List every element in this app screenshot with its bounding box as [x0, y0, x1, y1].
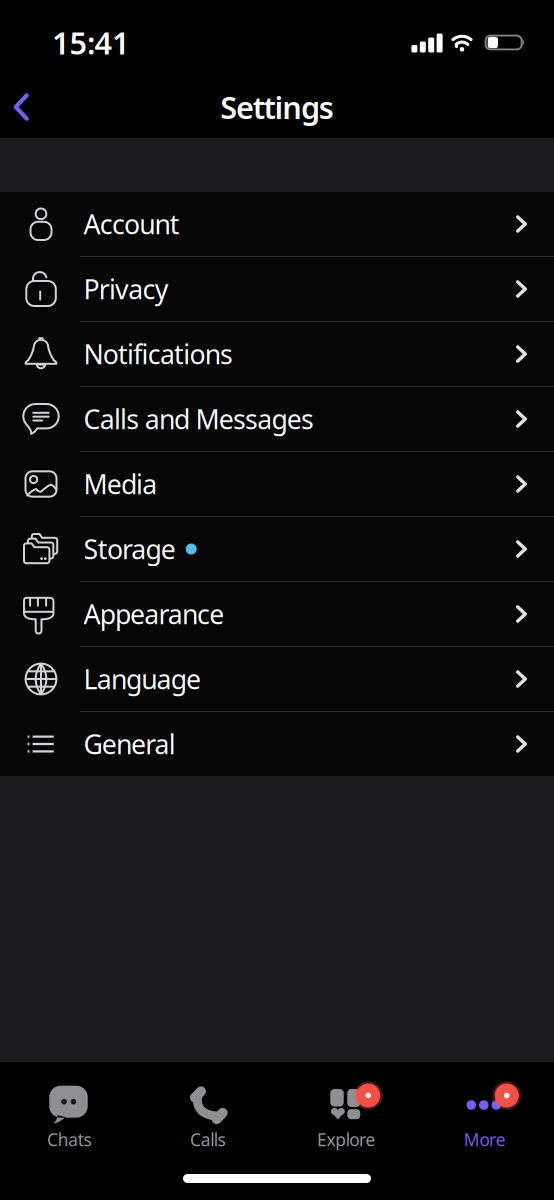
button[interactable]: Calls: [138, 1078, 277, 1151]
button[interactable]: Language: [0, 647, 554, 711]
staticText: Settings: [220, 87, 334, 127]
staticText: Appearance: [83, 596, 224, 632]
staticText: Privacy: [83, 271, 169, 307]
staticText: Calls: [190, 1128, 225, 1151]
staticText: Chats: [47, 1128, 91, 1151]
staticText: Storage: [83, 531, 176, 567]
staticText: 15:41: [52, 22, 130, 63]
button[interactable]: Back: [0, 89, 44, 133]
staticText: Calls and Messages: [83, 401, 314, 437]
staticText: Explore: [317, 1128, 376, 1151]
button[interactable]: Notifications: [0, 322, 554, 386]
button[interactable]: Account: [0, 192, 554, 256]
button[interactable]: Chats: [0, 1078, 138, 1151]
button[interactable]: Media: [0, 452, 554, 516]
button[interactable]: Appearance: [0, 582, 554, 646]
staticText: Notifications: [83, 336, 233, 372]
staticText: Language: [83, 661, 201, 697]
button[interactable]: More: [415, 1078, 554, 1151]
button[interactable]: Explore: [277, 1078, 415, 1151]
staticText: Media: [83, 466, 157, 502]
staticText: Account: [83, 206, 180, 242]
button[interactable]: Calls and Messages: [0, 387, 554, 451]
button[interactable]: Privacy: [0, 257, 554, 321]
button[interactable]: General: [0, 712, 554, 776]
button[interactable]: Storage: [0, 517, 554, 581]
staticText: More: [464, 1128, 506, 1151]
staticText: General: [83, 726, 176, 762]
